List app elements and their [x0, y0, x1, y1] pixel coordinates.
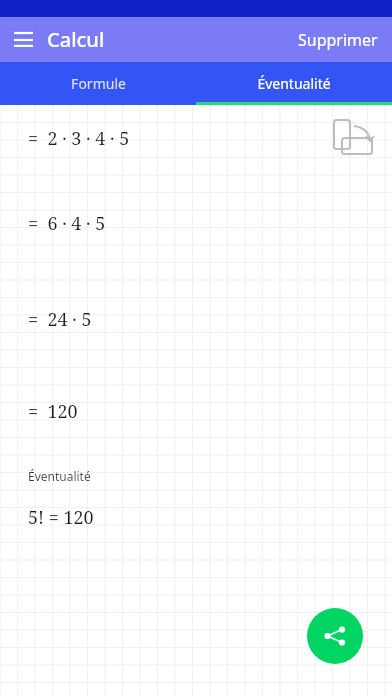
button[interactable]: Éventualité: [196, 62, 392, 105]
staticText: = 120: [28, 399, 78, 424]
staticText: Formule: [71, 74, 126, 93]
staticText: = 24 · 5: [28, 307, 92, 332]
staticText: Calcul: [47, 26, 105, 53]
staticText: Supprimer: [298, 29, 378, 51]
button[interactable]: Menu: [8, 25, 38, 55]
button[interactable]: Supprimer: [284, 19, 392, 61]
staticText: = 2 · 3 · 4 · 5: [28, 126, 130, 151]
staticText: 5! = 120: [28, 505, 94, 530]
staticText: Éventualité: [28, 468, 91, 484]
button[interactable]: Share: [307, 608, 363, 664]
button[interactable]: Rotate screen: [330, 118, 376, 158]
button[interactable]: Formule: [0, 62, 196, 105]
staticText: Éventualité: [257, 74, 331, 93]
staticText: = 6 · 4 · 5: [28, 211, 106, 236]
